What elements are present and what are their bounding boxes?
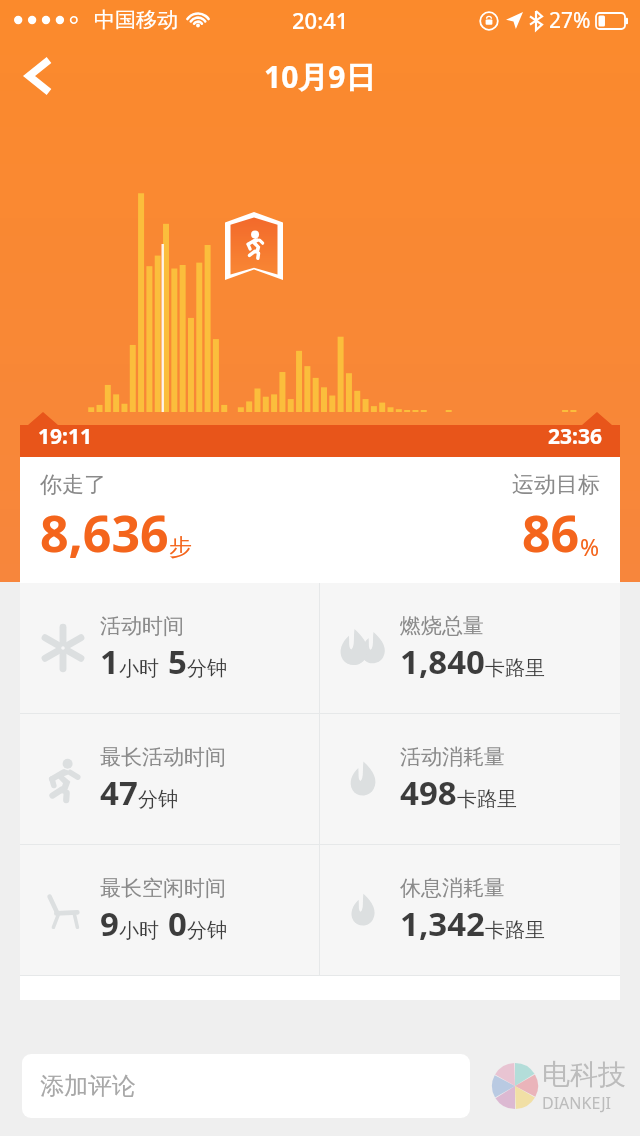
staticText: 电科技 <box>542 1057 626 1092</box>
staticText: 运动目标 <box>512 471 600 499</box>
staticText: % <box>580 531 600 562</box>
button[interactable]: 你走了 <box>40 471 600 567</box>
staticText: 卡路里 <box>485 656 545 681</box>
staticText: DIANKEJI <box>542 1092 612 1114</box>
staticText: 活动消耗量 <box>400 744 505 770</box>
staticText: 498 <box>400 770 457 815</box>
staticText: 9 <box>100 901 119 946</box>
staticText: 最长空闲时间 <box>100 875 226 901</box>
button[interactable]: 休息消耗量 <box>320 845 620 975</box>
staticText: 86 <box>522 499 580 567</box>
staticText: 1 <box>100 639 119 684</box>
staticText: 分钟 <box>187 656 227 681</box>
staticText: 卡路里 <box>485 918 545 943</box>
staticText: 休息消耗量 <box>400 875 505 901</box>
staticText: 47 <box>100 770 138 815</box>
staticText: 最长活动时间 <box>100 744 226 770</box>
staticText: 10月9日 <box>264 56 376 97</box>
button[interactable]: 添加评论 <box>22 1054 470 1118</box>
staticText: 23:36 <box>548 422 602 451</box>
staticText: 分钟 <box>187 918 227 943</box>
staticText: 分钟 <box>138 787 178 812</box>
staticText: 你走了 <box>40 471 106 499</box>
staticText: 小时 <box>119 656 159 681</box>
staticText: 卡路里 <box>457 787 517 812</box>
staticText: 20:41 <box>292 5 349 35</box>
staticText: 1,840 <box>400 639 485 684</box>
staticText: 1,342 <box>400 901 485 946</box>
button[interactable]: 燃烧总量 <box>320 583 620 713</box>
staticText: 5 <box>168 639 187 684</box>
button[interactable]: Back <box>8 46 68 106</box>
staticText: 19:11 <box>38 422 92 451</box>
button[interactable]: 最长空闲时间 <box>20 845 319 975</box>
button[interactable]: 活动时间 <box>20 583 319 713</box>
staticText: 27% <box>549 6 591 35</box>
staticText: 中国移动 <box>94 7 178 33</box>
staticText: 8,636 <box>40 499 169 567</box>
staticText: 添加评论 <box>40 1071 136 1101</box>
staticText: 活动时间 <box>100 613 184 639</box>
button[interactable]: 活动消耗量 <box>320 714 620 844</box>
staticText: 小时 <box>119 918 159 943</box>
button[interactable]: 最长活动时间 <box>20 714 319 844</box>
staticText: 步 <box>169 533 192 562</box>
staticText: 燃烧总量 <box>400 613 484 639</box>
staticText: 0 <box>168 901 187 946</box>
